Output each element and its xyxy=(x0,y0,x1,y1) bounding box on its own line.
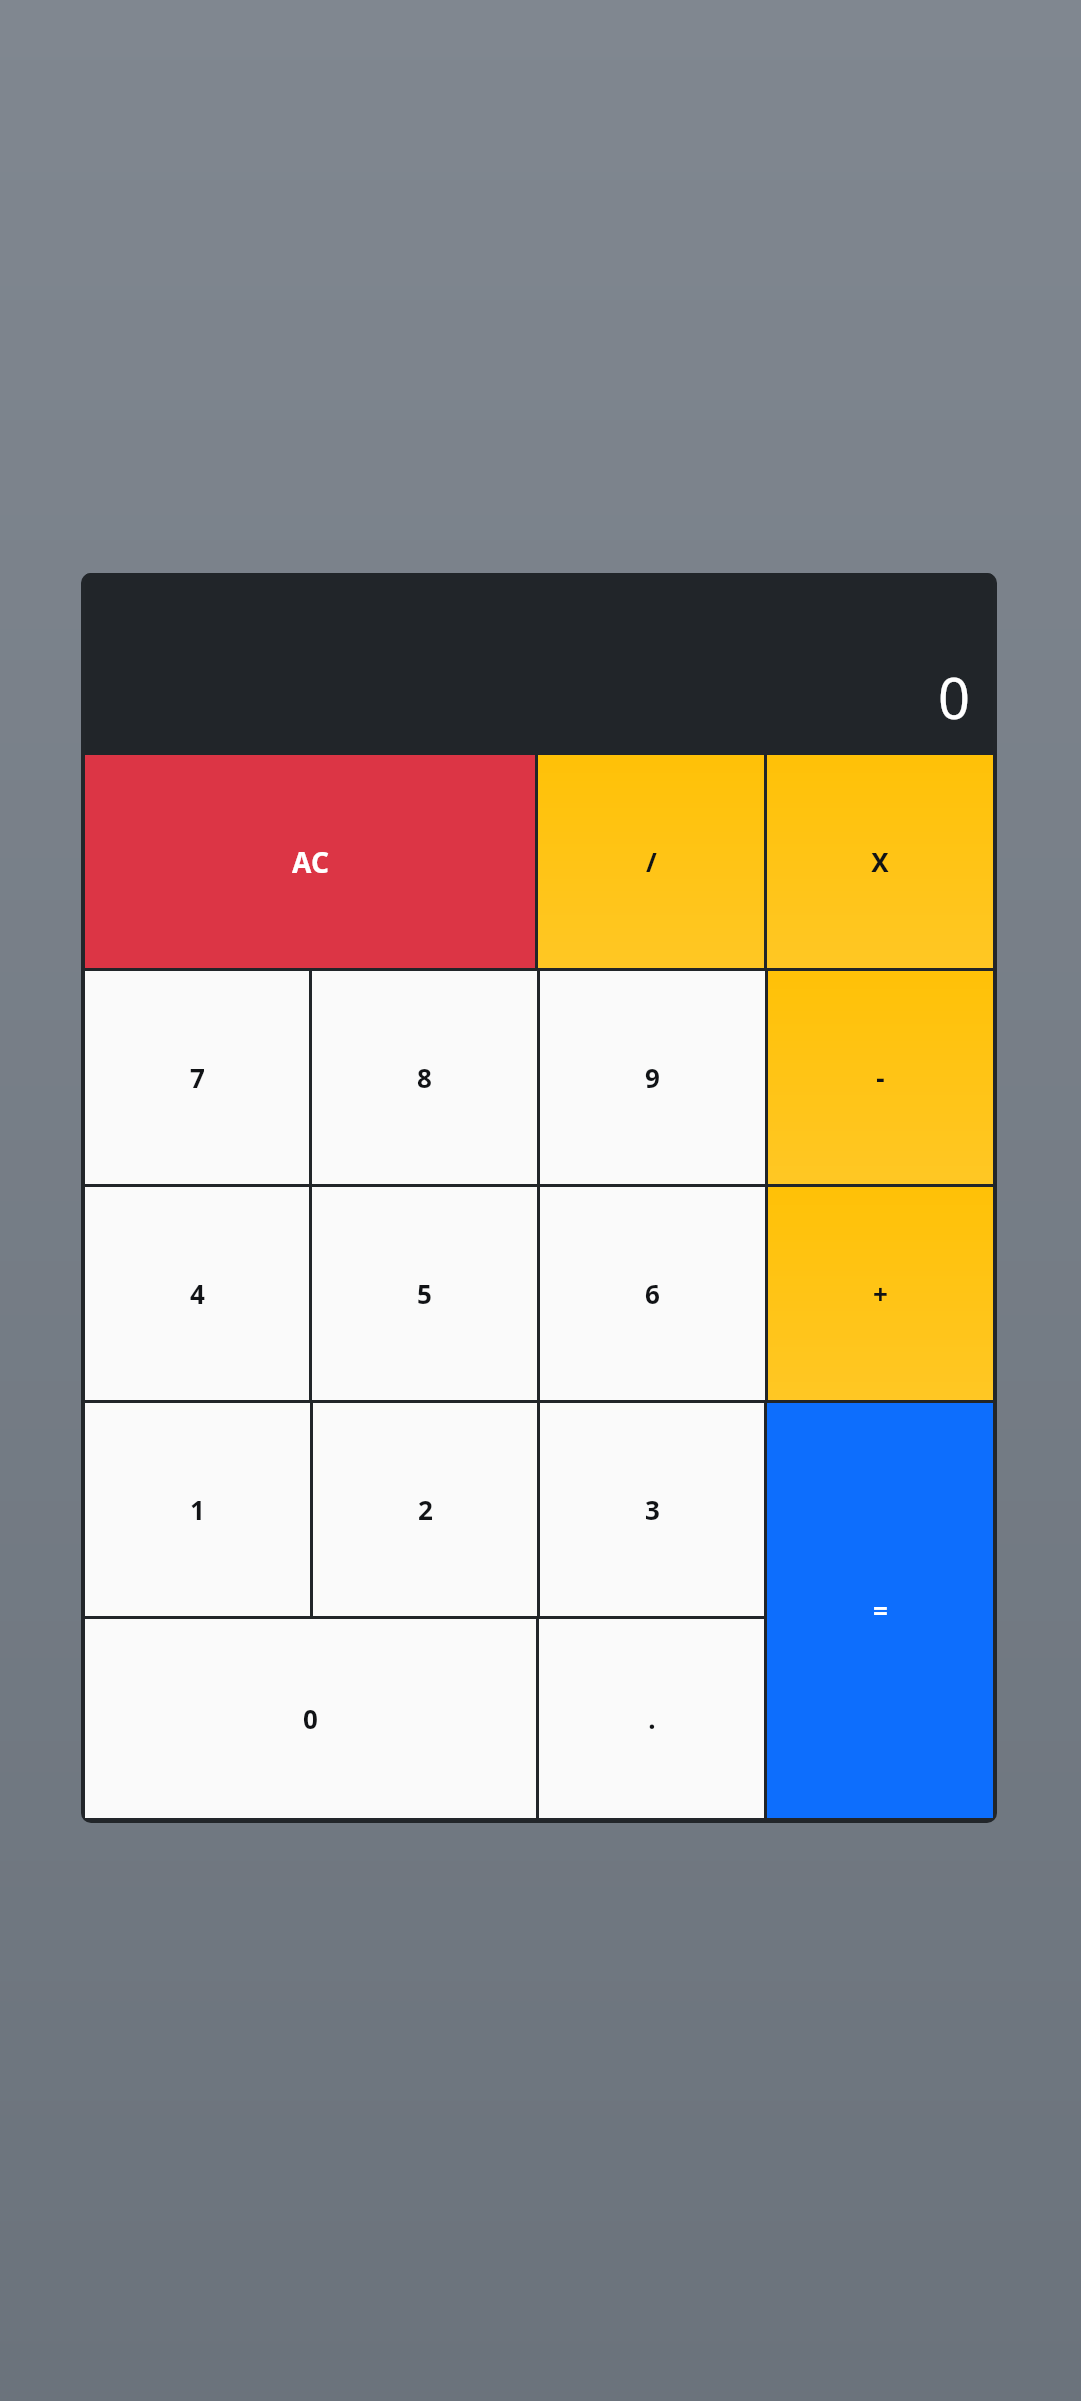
staticText: 8 xyxy=(417,1060,432,1095)
staticText: 7 xyxy=(190,1060,205,1095)
staticText: 6 xyxy=(645,1276,660,1311)
staticText: X xyxy=(871,844,889,879)
button[interactable]: Divide xyxy=(538,755,764,968)
staticText: 0 xyxy=(303,1701,318,1736)
button[interactable]: 1 xyxy=(85,1403,310,1616)
button[interactable]: Minus xyxy=(768,971,993,1184)
button[interactable]: Decimal point xyxy=(539,1619,764,1818)
button[interactable]: 4 xyxy=(85,1187,309,1400)
button[interactable]: 9 xyxy=(540,971,765,1184)
staticText: 2 xyxy=(418,1492,433,1527)
button[interactable]: 6 xyxy=(540,1187,765,1400)
button[interactable]: AC xyxy=(85,755,535,968)
staticText: . xyxy=(648,1701,656,1736)
staticText: 9 xyxy=(645,1060,660,1095)
staticText: + xyxy=(873,1276,888,1311)
button[interactable]: 8 xyxy=(312,971,537,1184)
button[interactable]: 5 xyxy=(312,1187,537,1400)
staticText: 5 xyxy=(417,1276,432,1311)
staticText: 3 xyxy=(645,1492,660,1527)
button[interactable]: 0 xyxy=(85,1619,536,1818)
button[interactable]: Multiply xyxy=(767,755,993,968)
staticText: = xyxy=(873,1593,888,1628)
staticText: 1 xyxy=(190,1492,205,1527)
button[interactable]: 7 xyxy=(85,971,309,1184)
staticText: 0 xyxy=(938,659,971,735)
staticText: - xyxy=(876,1060,885,1095)
button[interactable]: 3 xyxy=(540,1403,764,1616)
button[interactable]: Plus xyxy=(768,1187,993,1400)
button[interactable]: Equals xyxy=(767,1403,993,1818)
staticText: AC xyxy=(292,843,329,881)
button[interactable]: 2 xyxy=(313,1403,537,1616)
staticText: / xyxy=(646,844,657,879)
staticText: 4 xyxy=(190,1276,205,1311)
